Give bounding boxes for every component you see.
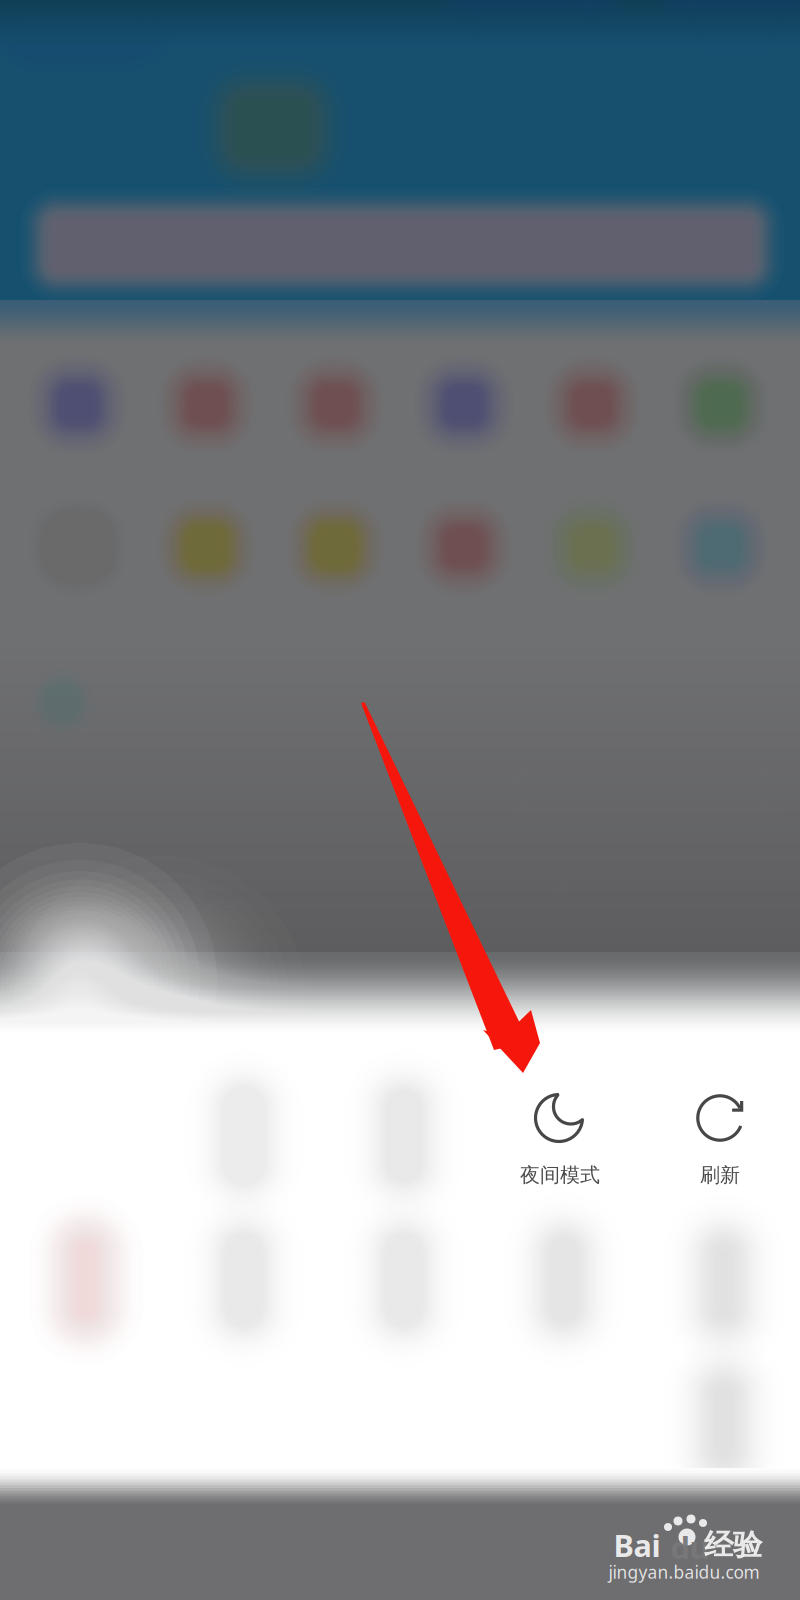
staticText: 刷新 bbox=[700, 1163, 740, 1187]
staticText: Bai bbox=[613, 1525, 660, 1565]
button[interactable]: 夜间模式 bbox=[0, 0, 800, 1600]
staticText: 夜间模式 bbox=[520, 1163, 600, 1187]
staticText: 经验 bbox=[704, 1527, 762, 1563]
staticText: du bbox=[670, 1527, 709, 1567]
button[interactable]: 刷新 bbox=[0, 0, 800, 1600]
staticText: jingyan.baidu.com bbox=[608, 1560, 759, 1583]
